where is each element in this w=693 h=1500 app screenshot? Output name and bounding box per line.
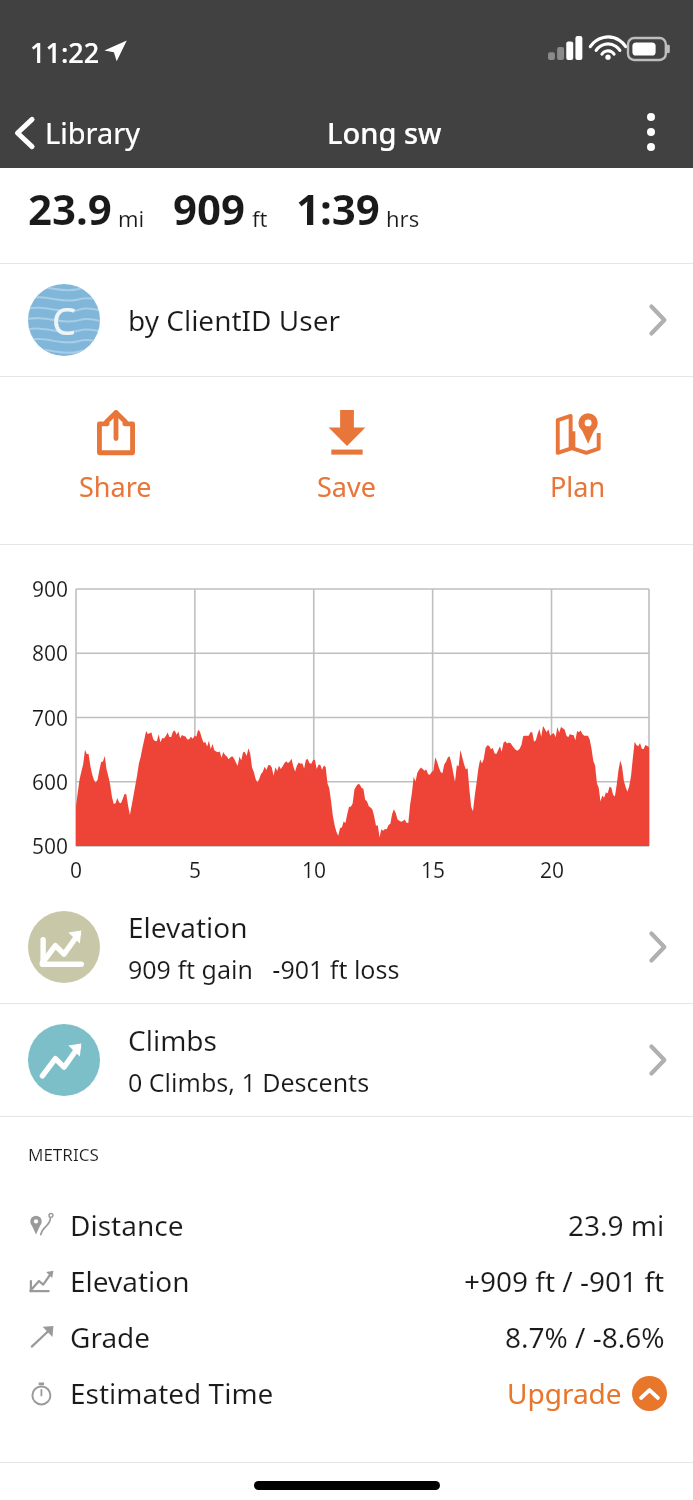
staticText: Share [79,468,152,505]
staticText: +909 ft / -901 ft [464,1262,665,1300]
staticText: 15 [403,856,463,885]
staticText: Upgrade [507,1374,622,1412]
button[interactable]: Climbs [0,1004,693,1116]
button[interactable]: Elevation [0,1253,693,1309]
staticText: Elevation [128,908,248,946]
staticText: Distance [70,1206,184,1244]
staticText: 23.9 [28,180,112,237]
staticText: 11:22 [30,34,100,71]
button[interactable]: Grade [0,1309,693,1365]
button[interactable]: Library [0,105,150,160]
staticText: 500 [20,832,68,861]
staticText: Elevation [70,1262,190,1300]
staticText: 20 [522,856,582,885]
staticText: C [52,294,77,346]
button[interactable]: Share [0,377,231,544]
staticText: ft [252,203,268,233]
button[interactable]: Plan [462,377,693,544]
staticText: Plan [550,468,606,505]
staticText: mi [118,203,145,233]
staticText: Estimated Time [70,1374,274,1412]
staticText: 10 [284,856,344,885]
button[interactable]: Elevation [0,891,693,1003]
staticText: 600 [20,768,68,797]
staticText: 900 [20,575,68,604]
button[interactable]: More options [619,100,683,164]
staticText: 700 [20,704,68,733]
staticText: 5 [165,856,225,885]
staticText: 909 ft gain -901 ft loss [128,952,400,986]
staticText: 1:39 [296,180,380,237]
staticText: 23.9 mi [568,1206,665,1244]
staticText: Save [317,468,376,505]
button[interactable]: Distance [0,1197,693,1253]
button[interactable]: Save [231,377,462,544]
staticText: Long sw [327,113,442,152]
staticText: 0 [46,856,106,885]
button[interactable]: C [0,264,693,376]
staticText: METRICS [28,1143,99,1166]
staticText: Climbs [128,1021,217,1059]
staticText: Library [45,113,140,152]
staticText: 909 [173,180,246,237]
staticText: Grade [70,1318,151,1356]
staticText: by ClientID User [128,301,341,339]
staticText: 800 [20,639,68,668]
staticText: hrs [386,203,420,233]
staticText: 8.7% / -8.6% [505,1318,665,1356]
button[interactable]: Estimated Time [0,1365,693,1421]
staticText: 0 Climbs, 1 Descents [128,1065,370,1099]
